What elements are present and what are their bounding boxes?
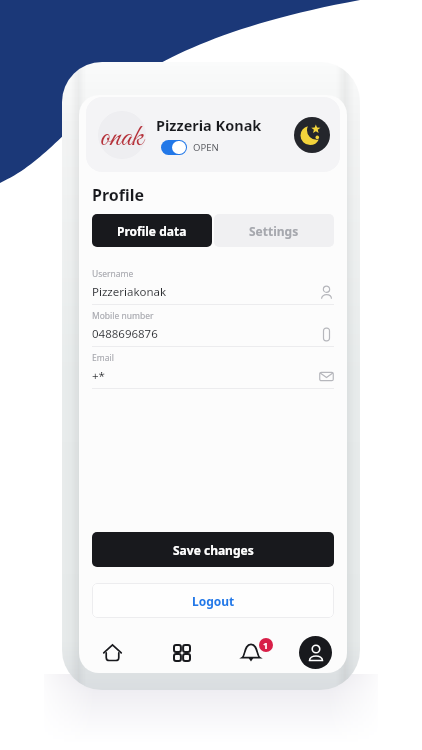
button[interactable]: Mobile number [92, 310, 334, 352]
staticText: Profile [92, 184, 145, 206]
button[interactable]: Night mode [294, 117, 330, 153]
staticText: Logout [192, 593, 235, 609]
button[interactable]: Profile data [92, 214, 212, 247]
button[interactable]: Settings [214, 214, 334, 247]
button[interactable]: Username [92, 268, 334, 310]
staticText: Email [92, 352, 114, 364]
button[interactable]: Categories [164, 635, 198, 669]
staticText: onak [100, 119, 144, 158]
button[interactable]: Home [95, 635, 129, 669]
staticText: Settings [249, 223, 299, 239]
staticText: 1 [263, 639, 269, 651]
staticText: Pizzeriakonak [92, 284, 319, 300]
staticText: 0488696876 [92, 326, 319, 342]
staticText: Username [92, 268, 134, 280]
button[interactable]: Profile [299, 636, 332, 669]
button[interactable]: Save changes [92, 532, 334, 567]
staticText: OPEN [193, 141, 219, 154]
button[interactable]: Logout [92, 583, 334, 618]
button[interactable]: Email [92, 352, 334, 394]
staticText: Profile data [117, 223, 187, 239]
staticText: Save changes [173, 542, 254, 558]
button[interactable]: Notifications [234, 631, 276, 673]
staticText: Mobile number [92, 310, 154, 322]
staticText: +* [92, 368, 319, 384]
button[interactable]: Open toggle [161, 140, 187, 155]
staticText: Pizzeria Konak [156, 115, 262, 135]
